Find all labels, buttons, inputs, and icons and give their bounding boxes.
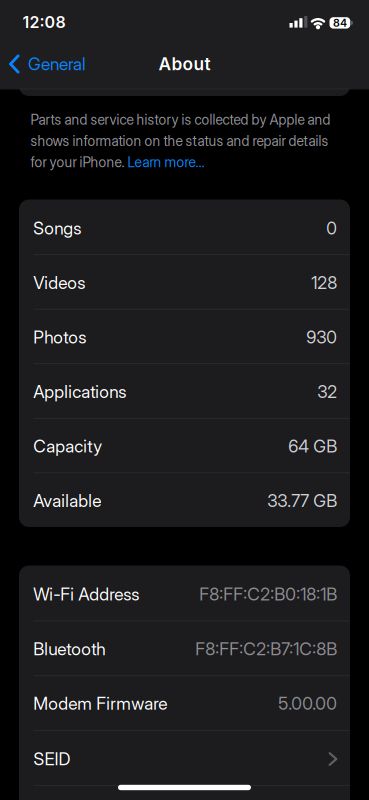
staticText: General — [28, 53, 86, 74]
staticText: Bluetooth — [33, 638, 105, 659]
staticText: Videos — [33, 272, 85, 293]
staticText: shows information on the status and repa… — [30, 133, 328, 149]
button[interactable]: Learn more… — [127, 154, 204, 171]
staticText: 84 — [333, 16, 347, 29]
staticText: Modem Firmware — [33, 693, 167, 714]
staticText: F8:FF:C2:B0:18:1B — [199, 584, 337, 605]
staticText: 32 — [317, 381, 337, 402]
staticText: Wi-Fi Address — [33, 584, 139, 605]
staticText: 930 — [306, 327, 337, 348]
staticText: Songs — [33, 218, 81, 239]
staticText: 64 GB — [288, 436, 337, 457]
staticText: F8:FF:C2:B7:1C:8B — [195, 638, 337, 659]
button[interactable]: General — [9, 53, 86, 74]
staticText: Photos — [33, 327, 86, 348]
staticText: SEID — [33, 748, 70, 769]
staticText: Learn more… — [127, 154, 204, 171]
staticText: About — [158, 53, 210, 74]
staticText: Parts and service history is collected b… — [30, 111, 330, 128]
button[interactable]: SEID — [33, 739, 337, 779]
staticText: for your iPhone. — [30, 154, 127, 171]
staticText: Applications — [33, 381, 126, 402]
staticText: 33.77 GB — [267, 490, 337, 511]
staticText: Capacity — [33, 436, 102, 457]
staticText: 0 — [326, 218, 337, 239]
staticText: 128 — [311, 272, 337, 293]
staticText: 12:08 — [22, 13, 65, 32]
staticText: 5.00.00 — [278, 693, 337, 714]
staticText: Available — [33, 490, 101, 511]
